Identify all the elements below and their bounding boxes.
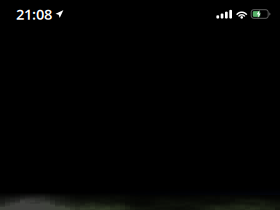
staticText: 21:08 [16,4,52,24]
button[interactable]: Photo [0,0,280,210]
